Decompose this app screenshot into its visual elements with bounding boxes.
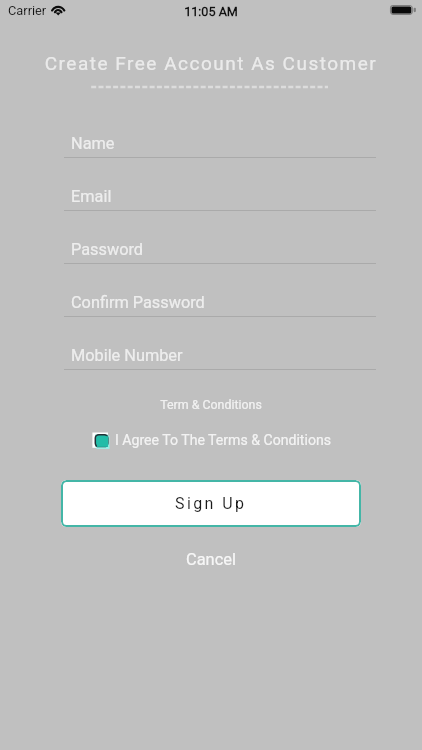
staticText: Password (71, 240, 143, 259)
other: Agree to terms checkbox (92, 430, 112, 450)
staticText: Email (71, 187, 112, 206)
other: Battery (390, 5, 419, 17)
staticText: Confirm Password (71, 293, 205, 312)
staticText: Name (71, 134, 115, 153)
button[interactable]: Cancel (0, 545, 422, 573)
button[interactable]: Mobile Number (64, 343, 376, 367)
button[interactable]: Agree to terms checkbox (92, 430, 331, 450)
staticText: Sign Up (175, 494, 247, 513)
staticText: Carrier (8, 3, 47, 18)
button[interactable]: Confirm Password (64, 290, 376, 314)
staticText: Cancel (186, 550, 236, 569)
staticText: Term & Conditions (0, 397, 422, 412)
other: Wi-Fi (50, 2, 67, 17)
button[interactable]: Name (64, 131, 376, 155)
staticText: Mobile Number (71, 346, 183, 365)
staticText: Create Free Account As Customer (0, 52, 422, 74)
button[interactable]: Email (64, 184, 376, 208)
button[interactable]: Sign Up (61, 480, 361, 527)
staticText: 11:05 AM (0, 4, 422, 19)
button[interactable]: Password (64, 237, 376, 261)
staticText: I Agree To The Terms & Conditions (115, 432, 331, 449)
